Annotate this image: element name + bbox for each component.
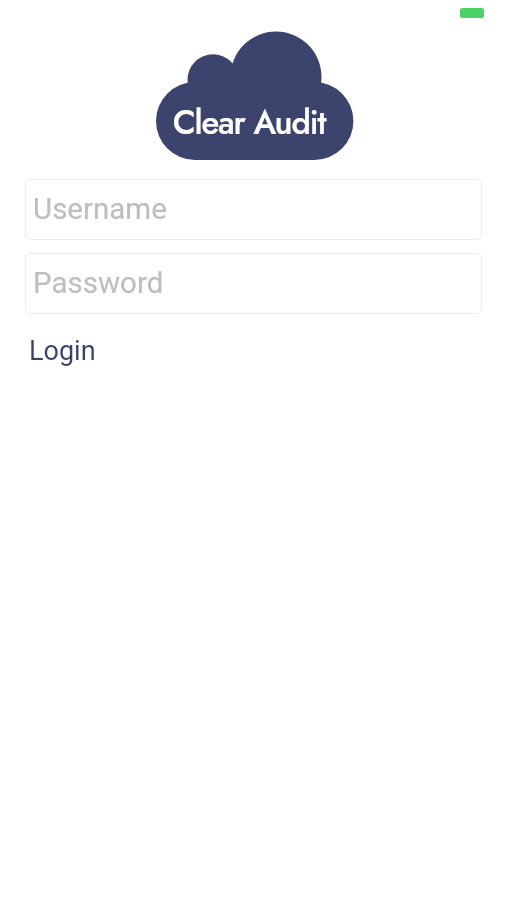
staticText: Clear Audit [147, 99, 351, 147]
staticText: Username [33, 192, 167, 227]
other: Clear Audit logo [153, 29, 357, 163]
staticText: Login [29, 335, 96, 367]
button[interactable]: Connection status [460, 8, 484, 18]
button[interactable]: Password [25, 253, 482, 314]
button[interactable]: Username [25, 179, 482, 240]
button[interactable]: Login [25, 328, 104, 373]
staticText: Password [33, 266, 164, 301]
